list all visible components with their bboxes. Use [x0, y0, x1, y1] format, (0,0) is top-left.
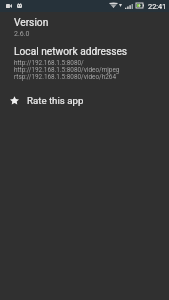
staticText: Rate this app	[27, 95, 84, 106]
staticText: Local network addresses	[14, 46, 128, 58]
staticText: http://192.168.1.5:8080/	[14, 59, 84, 67]
staticText: http://192.168.1.5:8080/video/mjpeg	[14, 66, 120, 74]
staticText: 22:41	[148, 2, 167, 11]
staticText: 2.6.0	[14, 30, 30, 38]
staticText: Version	[14, 17, 49, 29]
button[interactable]: Rate this app	[0, 90, 169, 111]
staticText: rtsp://192.168.1.5:8080/video/h264	[14, 73, 116, 81]
